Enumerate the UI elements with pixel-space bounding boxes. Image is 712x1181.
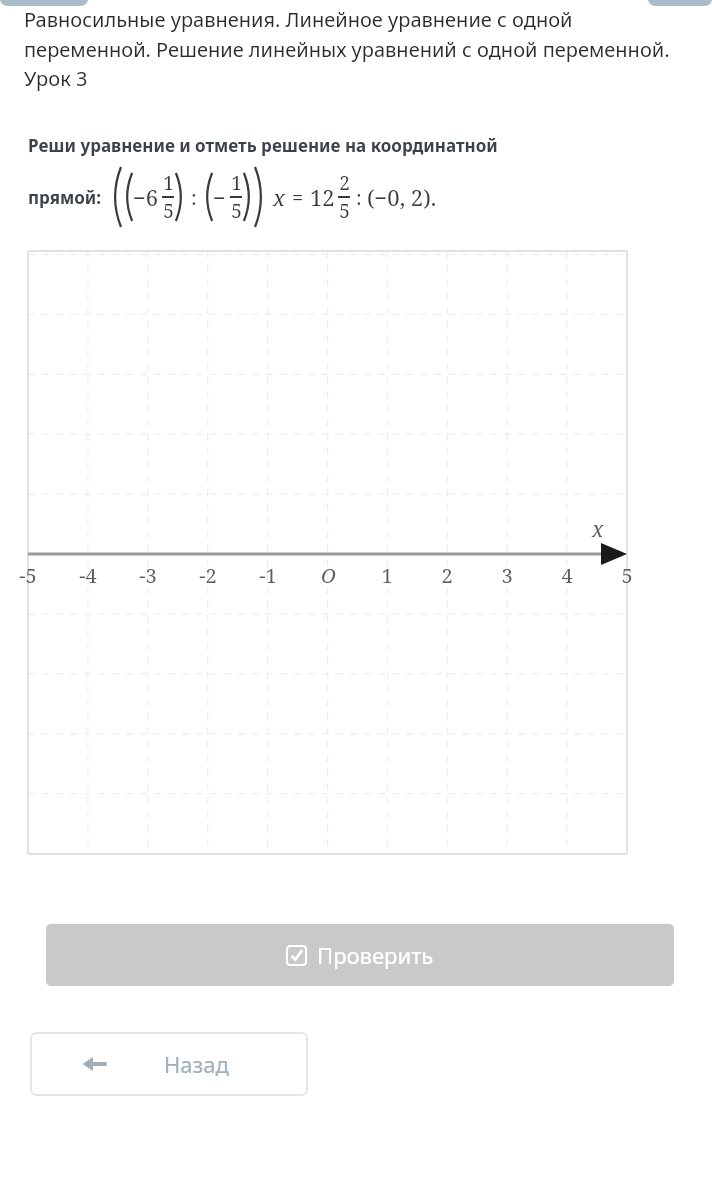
button[interactable]: Назад [30,1032,308,1096]
staticText: 2 [339,170,350,196]
staticText: Равносильные уравнения. Линейное уравнен… [24,6,688,92]
staticText: 1 [381,562,393,589]
staticText: 5 [621,562,633,589]
staticText: -2 [199,562,217,589]
other: Назад [82,1051,108,1077]
staticText: 12 [310,182,335,212]
staticText: -4 [79,562,97,589]
staticText: 5 [339,198,350,224]
staticText: x [592,515,604,544]
staticText: 5 [231,198,242,224]
staticText: 1 [231,170,242,196]
staticText: 3 [501,562,513,589]
staticText: x [273,182,286,212]
staticText: 1 [163,170,174,196]
staticText: 5 [163,198,174,224]
staticText: : [356,184,362,211]
staticText: Назад [164,1049,229,1079]
button[interactable]: Проверить [46,924,674,986]
staticText: − [213,182,226,212]
staticText: -3 [139,562,157,589]
staticText: = [292,184,304,211]
staticText: -5 [19,562,37,589]
staticText: 4 [561,562,573,589]
staticText: (−0, 2). [367,182,437,212]
staticText: -1 [259,562,277,589]
staticText: −6 [133,182,159,212]
staticText: O [321,562,336,589]
staticText: прямой: [28,186,101,209]
staticText: 2 [441,562,453,589]
staticText: : [191,184,197,211]
staticText: Проверить [317,940,434,970]
staticText: Реши уравнение и отметь решение на коорд… [28,134,498,157]
